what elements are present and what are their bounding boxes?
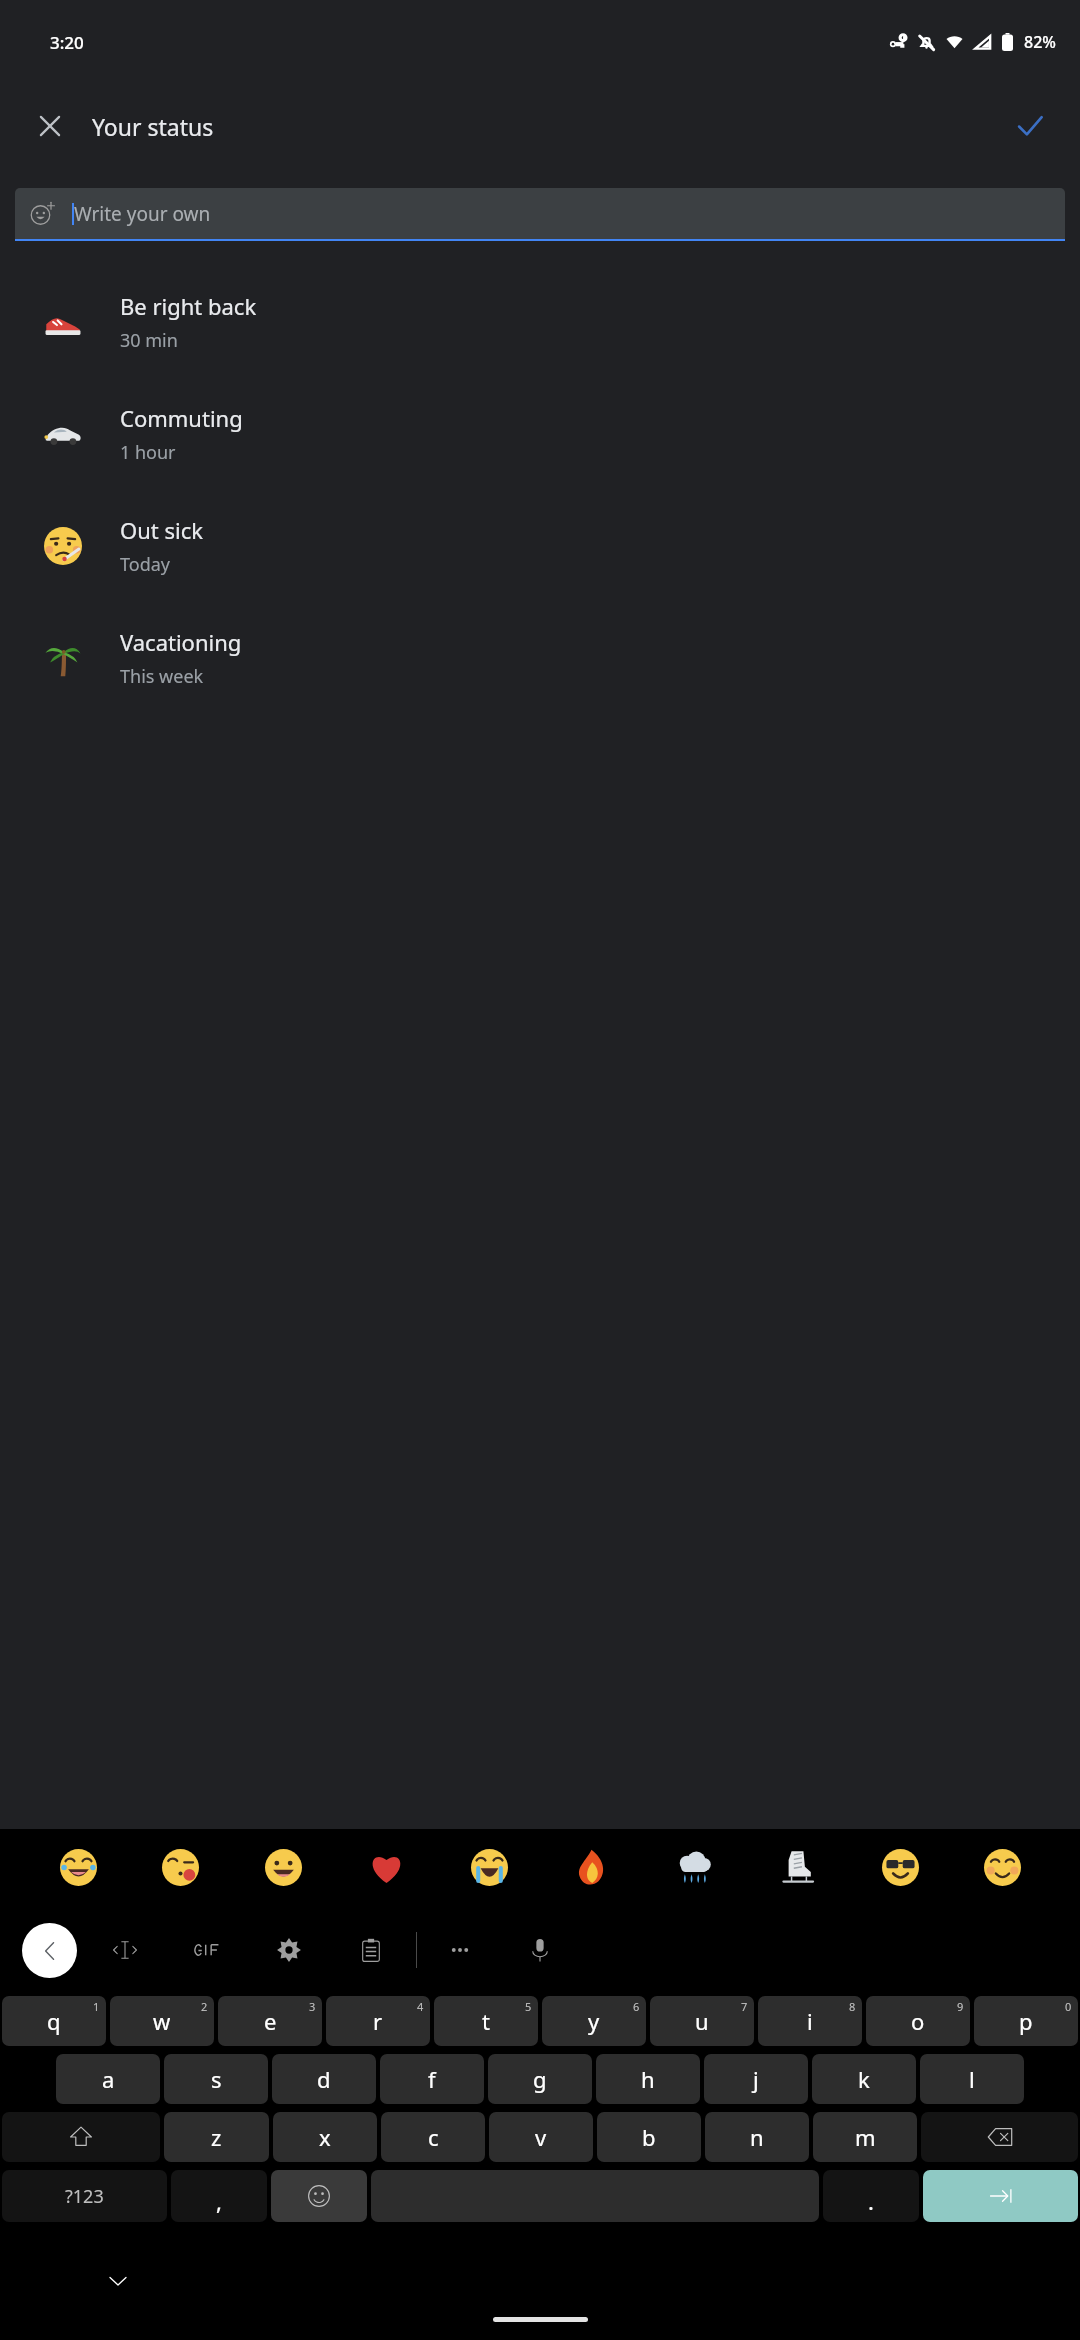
button[interactable]: e: [218, 1996, 322, 2046]
button[interactable]: Emoji: [972, 1837, 1032, 1897]
staticText: l: [969, 2064, 975, 2094]
staticText: v: [535, 2122, 547, 2152]
staticText: o: [911, 2006, 925, 2036]
staticText: Commuting: [120, 403, 243, 433]
button[interactable]: Enter: [923, 2170, 1078, 2222]
staticText: y: [588, 2006, 600, 2036]
button[interactable]: q: [2, 1996, 106, 2046]
button[interactable]: Voice input: [515, 1925, 565, 1975]
button[interactable]: Done: [1002, 98, 1058, 154]
staticText: z: [211, 2122, 222, 2152]
staticText: x: [319, 2122, 331, 2152]
button[interactable]: Emoji: [561, 1837, 621, 1897]
button[interactable]: h: [596, 2054, 700, 2104]
button[interactable]: z: [164, 2112, 269, 2162]
staticText: 5: [525, 1999, 532, 2014]
button[interactable]: Emoji: [767, 1837, 827, 1897]
button[interactable]: Emoji: [253, 1837, 313, 1897]
staticText: w: [153, 2006, 171, 2036]
button[interactable]: a: [56, 2054, 160, 2104]
button[interactable]: Out sick: [0, 490, 1080, 602]
button[interactable]: p: [974, 1996, 1078, 2046]
button[interactable]: Vacationing: [0, 602, 1080, 714]
staticText: p: [1019, 2006, 1033, 2036]
staticText: i: [807, 2006, 813, 2036]
button[interactable]: Clipboard: [346, 1925, 396, 1975]
button[interactable]: Emoji: [48, 1837, 108, 1897]
staticText: b: [642, 2122, 656, 2152]
staticText: Write your own: [74, 201, 211, 227]
button[interactable]: g: [488, 2054, 592, 2104]
button[interactable]: Shift: [2, 2112, 160, 2162]
button[interactable]: Emoji: [356, 1837, 416, 1897]
staticText: q: [47, 2006, 61, 2036]
staticText: ?123: [65, 2184, 104, 2209]
staticText: 3:20: [50, 31, 84, 54]
button[interactable]: w: [110, 1996, 214, 2046]
button[interactable]: Emoji: [459, 1837, 519, 1897]
button[interactable]: k: [812, 2054, 916, 2104]
staticText: 0: [1065, 1999, 1072, 2014]
button[interactable]: i: [758, 1996, 862, 2046]
button[interactable]: c: [381, 2112, 485, 2162]
button[interactable]: Emoji: [664, 1837, 724, 1897]
button[interactable]: ?123: [2, 2170, 167, 2222]
button[interactable]: j: [704, 2054, 808, 2104]
button[interactable]: Emoji: [271, 2170, 367, 2222]
staticText: 8: [849, 1999, 856, 2014]
button[interactable]: Emoji: [870, 1837, 930, 1897]
staticText: h: [641, 2064, 655, 2094]
button[interactable]: Be right back: [0, 266, 1080, 378]
button[interactable]: More options: [435, 1925, 485, 1975]
button[interactable]: t: [434, 1996, 538, 2046]
button[interactable]: u: [650, 1996, 754, 2046]
staticText: 2: [201, 1999, 208, 2014]
staticText: Your status: [92, 111, 214, 142]
staticText: This week: [120, 664, 204, 689]
staticText: .: [868, 2186, 874, 2216]
staticText: t: [482, 2006, 490, 2036]
button[interactable]: GIF: [182, 1925, 232, 1975]
button[interactable]: Emoji: [150, 1837, 210, 1897]
button[interactable]: y: [542, 1996, 646, 2046]
staticText: 82%: [1024, 31, 1056, 53]
button[interactable]: f: [380, 2054, 484, 2104]
staticText: Out sick: [120, 515, 203, 545]
staticText: e: [264, 2006, 277, 2036]
button[interactable]: Close: [22, 98, 78, 154]
staticText: k: [858, 2064, 870, 2094]
staticText: c: [428, 2122, 439, 2152]
button[interactable]: .: [823, 2170, 919, 2222]
button[interactable]: x: [273, 2112, 377, 2162]
staticText: 30 min: [120, 328, 178, 353]
button[interactable]: Text editing: [100, 1925, 150, 1975]
button[interactable]: r: [326, 1996, 430, 2046]
staticText: Today: [120, 552, 170, 577]
staticText: 1 hour: [120, 440, 176, 465]
staticText: ,: [216, 2186, 222, 2216]
staticText: s: [211, 2064, 222, 2094]
button[interactable]: Back: [22, 1923, 77, 1978]
staticText: 9: [957, 1999, 964, 2014]
button[interactable]: s: [164, 2054, 268, 2104]
button[interactable]: Settings: [264, 1925, 314, 1975]
button[interactable]: d: [272, 2054, 376, 2104]
staticText: Vacationing: [120, 627, 242, 657]
staticText: r: [373, 2006, 383, 2036]
button[interactable]: ,: [171, 2170, 267, 2222]
staticText: 3: [309, 1999, 316, 2014]
button[interactable]: Commuting: [0, 378, 1080, 490]
button[interactable]: Hide keyboard: [95, 2258, 141, 2304]
staticText: j: [753, 2064, 759, 2094]
button[interactable]: o: [866, 1996, 970, 2046]
button[interactable]: b: [597, 2112, 701, 2162]
button[interactable]: v: [489, 2112, 593, 2162]
button[interactable]: l: [920, 2054, 1024, 2104]
staticText: a: [102, 2064, 115, 2094]
button[interactable]: n: [705, 2112, 809, 2162]
button[interactable]: m: [813, 2112, 917, 2162]
button[interactable]: Backspace: [921, 2112, 1078, 2162]
button[interactable]: Write your own: [15, 188, 1065, 239]
staticText: m: [855, 2122, 876, 2152]
